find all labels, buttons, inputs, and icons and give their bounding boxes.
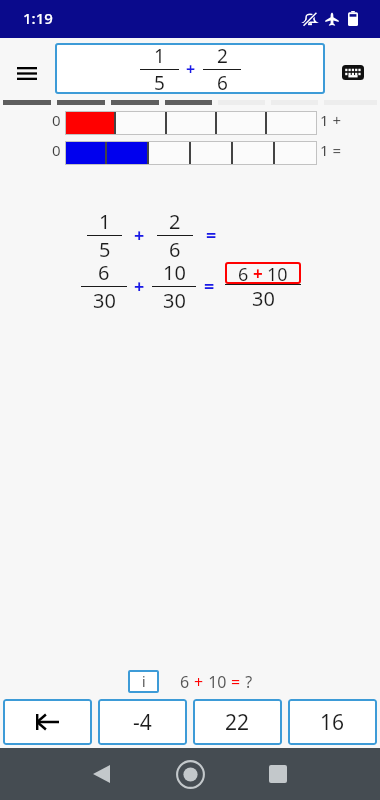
button[interactable]: -4 <box>98 699 187 745</box>
staticText: 1 + <box>320 110 342 130</box>
staticText: 6 <box>217 70 228 94</box>
staticText: + <box>134 223 145 248</box>
staticText: + <box>134 274 145 299</box>
staticText: 6 <box>169 236 181 263</box>
staticText: -4 <box>133 708 152 737</box>
staticText: 1 = <box>320 140 342 160</box>
button[interactable]: i <box>128 670 159 693</box>
staticText: + <box>194 671 204 693</box>
staticText: 10 <box>204 671 231 693</box>
staticText: 30 <box>93 287 116 314</box>
staticText: 1 <box>99 208 111 235</box>
staticText: 30 <box>163 287 186 314</box>
button[interactable]: Back <box>79 752 123 796</box>
button[interactable]: Menu <box>9 55 45 91</box>
staticText: 10 <box>267 262 288 284</box>
staticText: 2 <box>169 208 181 235</box>
staticText: 1:19 <box>23 8 53 28</box>
staticText: 30 <box>252 285 275 312</box>
staticText: 6 <box>98 259 110 286</box>
staticText: 16 <box>320 708 345 737</box>
staticText: = <box>206 223 217 248</box>
staticText: = <box>204 274 215 299</box>
staticText: + <box>253 262 263 284</box>
button[interactable]: Keyboard <box>336 55 370 89</box>
button[interactable]: Home <box>168 752 212 796</box>
staticText: 0 <box>52 140 61 160</box>
staticText: ? <box>241 671 253 693</box>
staticText: 6 <box>238 262 249 284</box>
button[interactable]: 22 <box>193 699 282 745</box>
staticText: = <box>231 671 241 693</box>
staticText: 2 <box>217 43 228 69</box>
button[interactable]: 16 <box>288 699 377 745</box>
staticText: 5 <box>99 236 111 263</box>
staticText: 1 <box>154 43 165 69</box>
button[interactable]: Backspace <box>3 699 92 745</box>
staticText: 22 <box>225 708 250 737</box>
staticText: 5 <box>154 70 165 94</box>
button[interactable]: Recents <box>256 752 300 796</box>
button[interactable]: 1 <box>55 43 325 94</box>
staticText: 6 <box>180 671 194 693</box>
staticText: 10 <box>163 259 186 286</box>
staticText: + <box>186 58 196 80</box>
staticText: i <box>142 672 146 691</box>
staticText: 0 <box>52 110 61 130</box>
